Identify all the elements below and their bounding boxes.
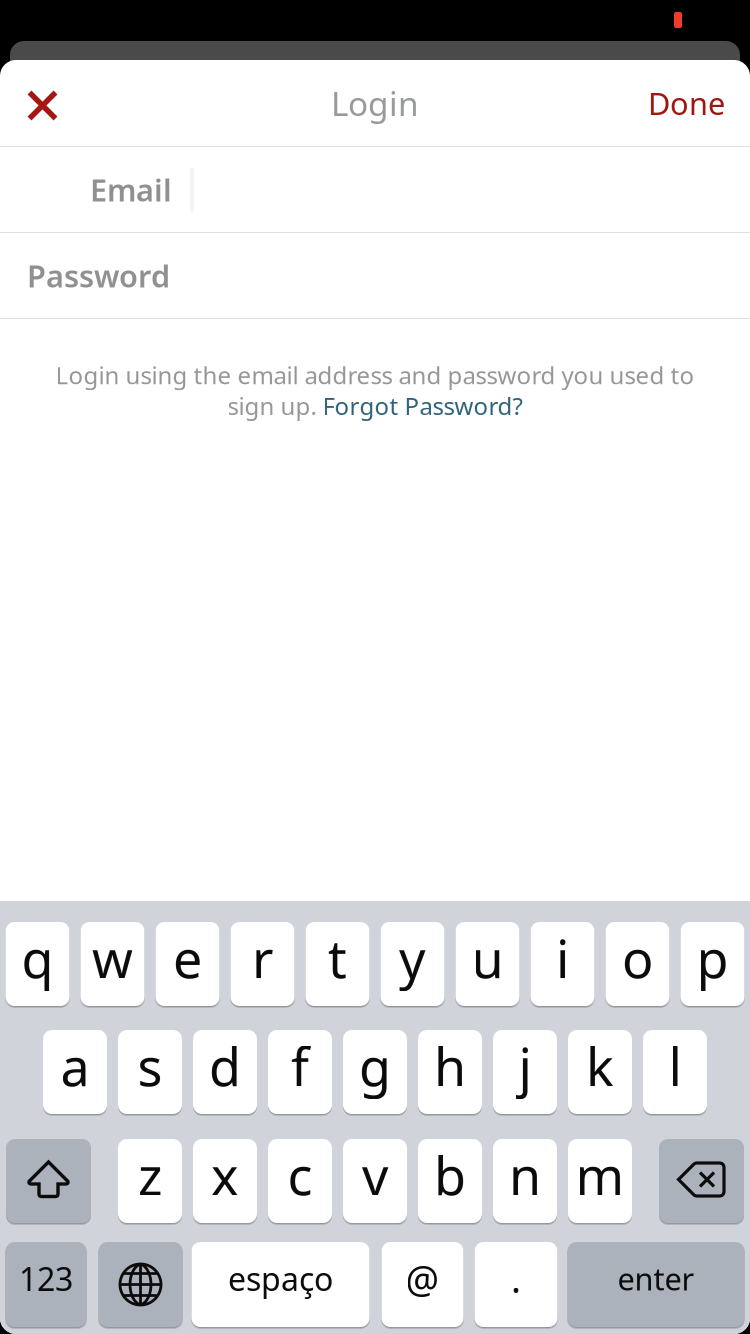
button[interactable]: o <box>605 922 669 1006</box>
staticText: u <box>471 923 503 993</box>
button[interactable]: . <box>474 1242 557 1327</box>
button[interactable]: v <box>343 1139 407 1223</box>
staticText: m <box>575 1140 624 1210</box>
staticText: . <box>511 1254 521 1303</box>
button[interactable]: g <box>343 1030 407 1114</box>
button[interactable]: Password <box>0 233 750 318</box>
staticText: z <box>138 1140 162 1210</box>
staticText: @ <box>405 1254 439 1303</box>
button[interactable]: m <box>568 1139 632 1223</box>
staticText: n <box>509 1140 541 1210</box>
button[interactable]: r <box>230 922 294 1006</box>
staticText: c <box>287 1140 312 1210</box>
staticText: s <box>137 1031 162 1101</box>
button[interactable]: y <box>380 922 444 1006</box>
staticText: p <box>696 923 728 993</box>
staticText: d <box>209 1031 241 1101</box>
button[interactable]: 123 <box>5 1242 86 1327</box>
staticText: b <box>434 1140 466 1210</box>
staticText: h <box>434 1031 466 1101</box>
staticText: enter <box>617 1258 694 1299</box>
button[interactable]: n <box>493 1139 557 1223</box>
button[interactable]: Next keyboard <box>98 1242 182 1327</box>
button[interactable]: s <box>118 1030 182 1114</box>
button[interactable]: x <box>193 1139 257 1223</box>
button[interactable]: a <box>43 1030 107 1114</box>
staticText: o <box>622 923 653 993</box>
button[interactable]: k <box>568 1030 632 1114</box>
staticText: Done <box>648 83 725 123</box>
staticText: q <box>21 923 53 993</box>
button[interactable]: Email <box>0 147 750 232</box>
button[interactable]: espaço <box>191 1242 369 1327</box>
staticText: x <box>211 1140 239 1210</box>
staticText: sign up. <box>227 390 322 422</box>
button[interactable]: c <box>268 1139 332 1223</box>
staticText: v <box>362 1140 388 1210</box>
button[interactable]: Shift <box>6 1139 91 1223</box>
staticText: f <box>291 1031 309 1101</box>
staticText: k <box>586 1031 614 1101</box>
button[interactable]: f <box>268 1030 332 1114</box>
staticText: 123 <box>19 1257 73 1300</box>
button[interactable]: z <box>118 1139 182 1223</box>
button[interactable]: Forgot Password? <box>322 390 522 422</box>
button[interactable]: i <box>530 922 594 1006</box>
staticText: a <box>60 1031 89 1101</box>
button[interactable]: w <box>80 922 144 1006</box>
button[interactable]: h <box>418 1030 482 1114</box>
button[interactable]: e <box>155 922 219 1006</box>
staticText: g <box>359 1031 391 1101</box>
staticText: Forgot Password? <box>322 390 522 422</box>
staticText: Password <box>27 255 170 296</box>
button[interactable]: Delete <box>659 1139 744 1223</box>
staticText: i <box>556 923 569 993</box>
staticText: l <box>668 1031 681 1101</box>
staticText: r <box>252 923 273 993</box>
button[interactable]: Close <box>10 71 74 135</box>
button[interactable]: l <box>643 1030 707 1114</box>
button[interactable]: t <box>305 922 369 1006</box>
button[interactable]: Done <box>648 71 725 135</box>
staticText: t <box>328 923 347 993</box>
staticText: y <box>399 923 426 993</box>
button[interactable]: j <box>493 1030 557 1114</box>
staticText: Login using the email address and passwo… <box>55 359 694 391</box>
button[interactable]: b <box>418 1139 482 1223</box>
button[interactable]: p <box>680 922 744 1006</box>
button[interactable]: @ <box>381 1242 463 1327</box>
staticText: e <box>173 923 202 993</box>
staticText: Login <box>331 81 419 125</box>
staticText: Email <box>90 169 172 210</box>
staticText: espaço <box>228 1257 333 1300</box>
button[interactable]: enter <box>567 1242 744 1327</box>
staticText: j <box>518 1031 531 1101</box>
staticText: w <box>92 923 133 993</box>
button[interactable]: q <box>5 922 69 1006</box>
button[interactable]: d <box>193 1030 257 1114</box>
button[interactable]: u <box>455 922 519 1006</box>
